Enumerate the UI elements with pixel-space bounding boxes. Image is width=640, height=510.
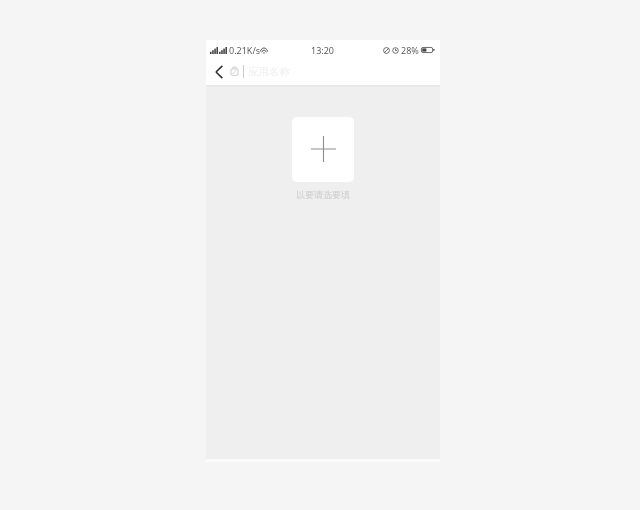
button[interactable]: Back	[212, 63, 226, 80]
staticText: 应用名称	[248, 65, 290, 78]
staticText: 28%	[401, 44, 419, 56]
staticText: 以要请选要填	[296, 189, 350, 200]
staticText: 0.21K/s	[229, 44, 261, 56]
staticText: 13:20	[311, 44, 335, 56]
button[interactable]: Add	[292, 117, 354, 182]
button[interactable]: 应用名称	[230, 65, 290, 78]
